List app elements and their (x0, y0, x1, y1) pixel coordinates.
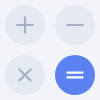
button[interactable]: Multiply (5, 55, 45, 95)
button[interactable]: Subtract (55, 5, 95, 45)
button[interactable]: Equals (55, 55, 95, 95)
button[interactable]: Add (5, 5, 45, 45)
